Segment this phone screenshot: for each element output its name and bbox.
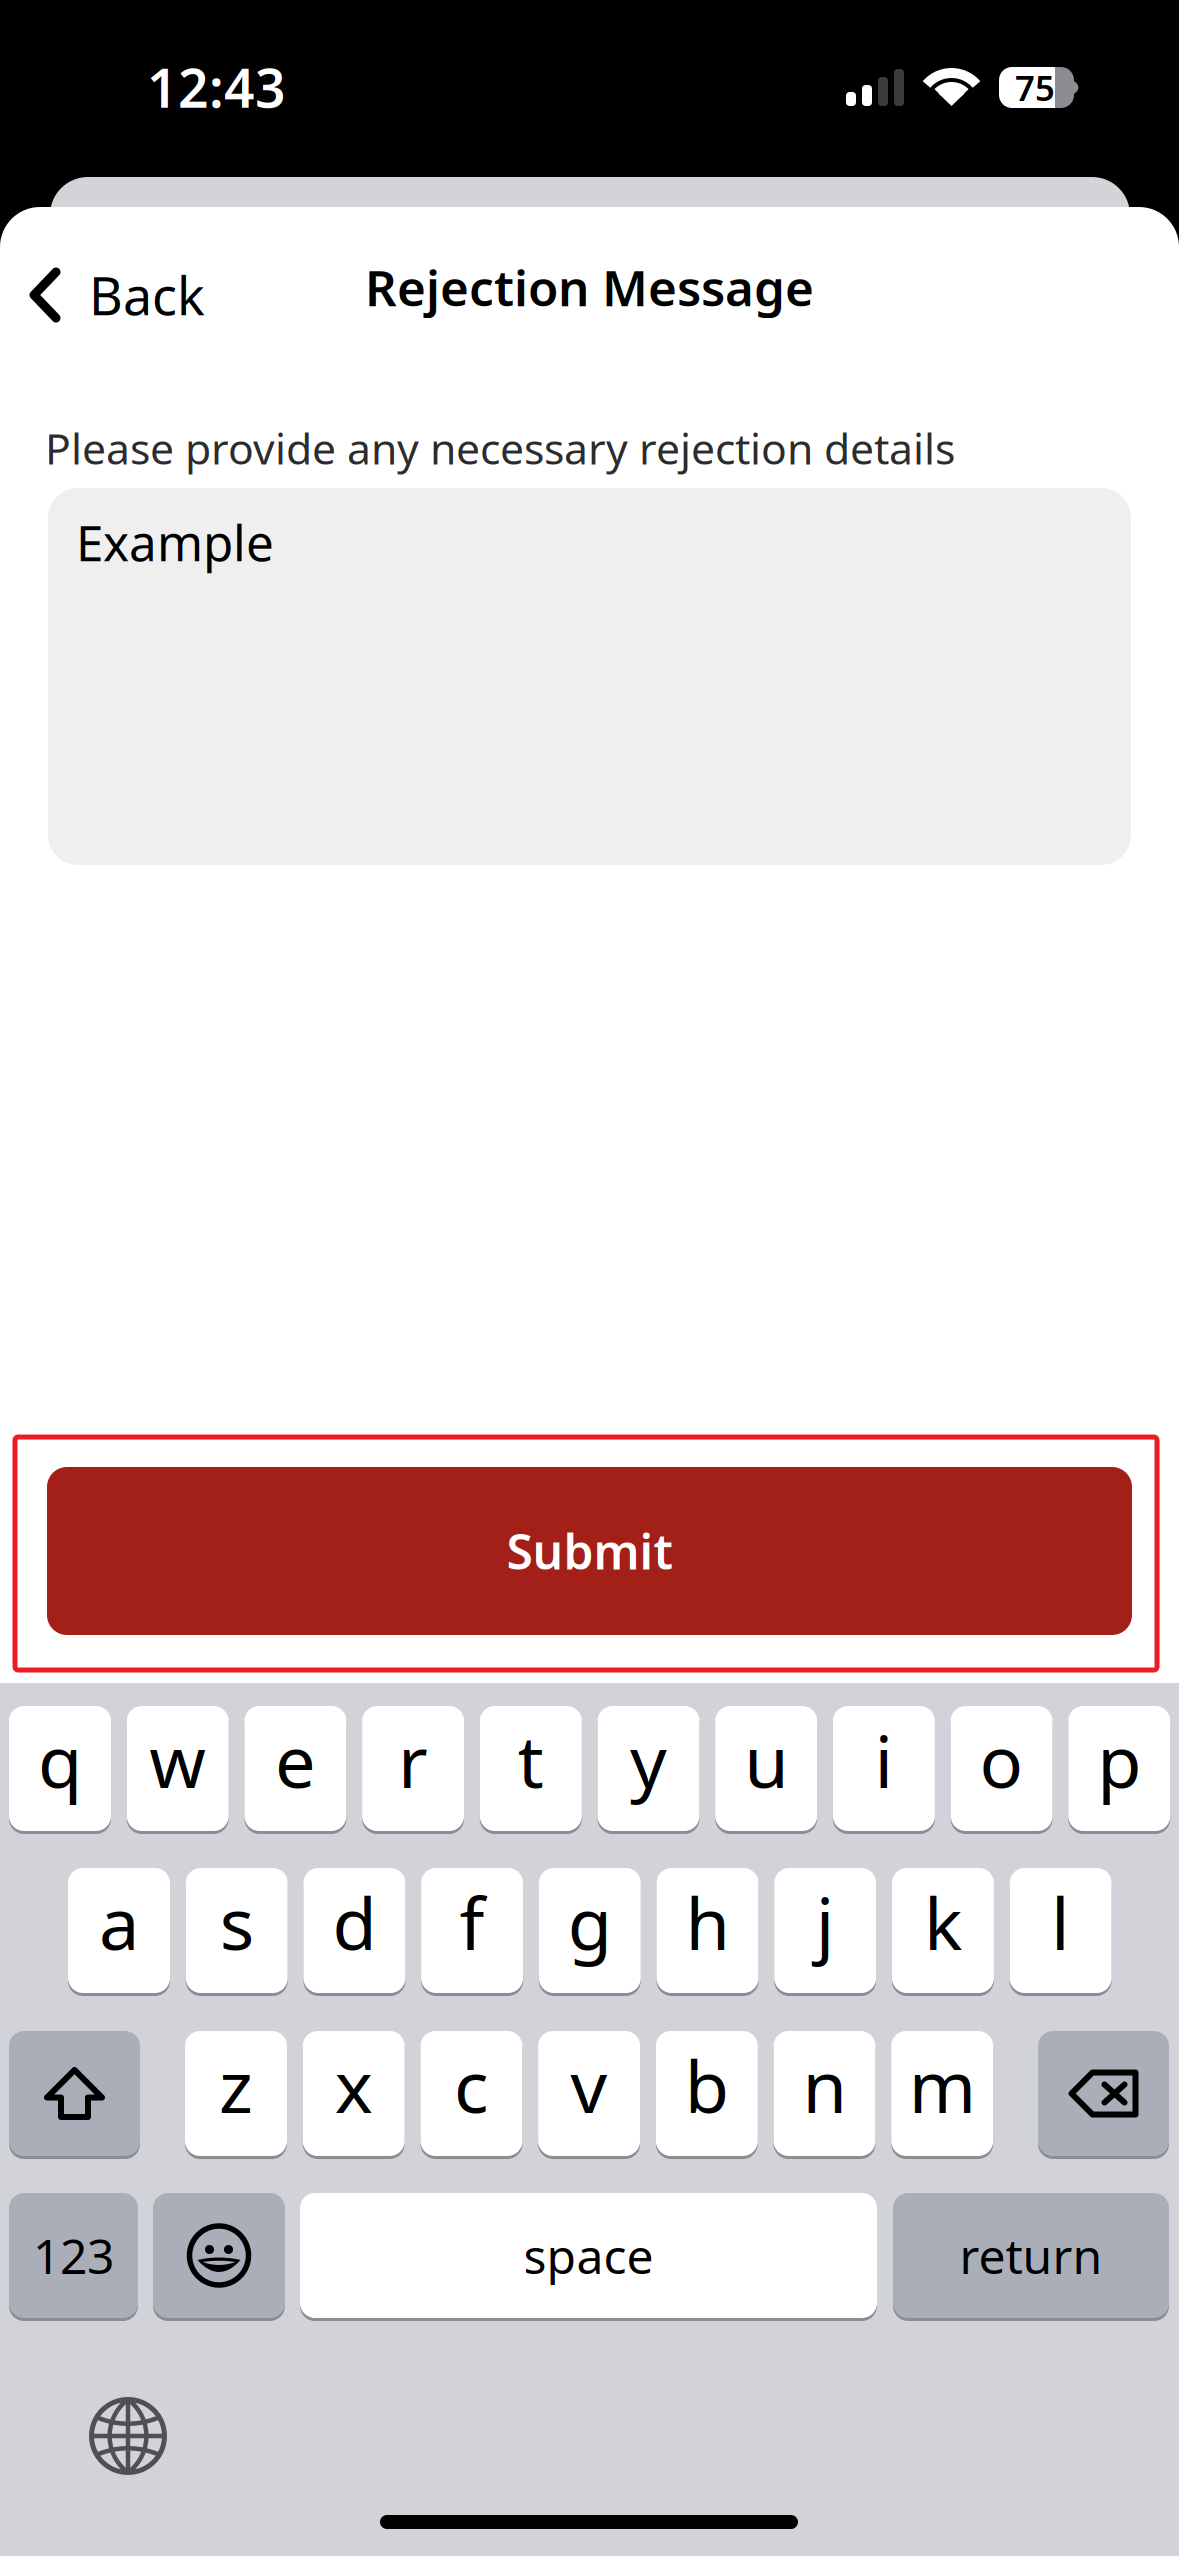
button[interactable]: f bbox=[421, 1866, 523, 1995]
staticText: u bbox=[744, 1712, 788, 1808]
button[interactable]: Submit bbox=[0, 0, 1179, 2556]
staticText: k bbox=[924, 1874, 962, 1970]
button[interactable]: space bbox=[300, 2191, 877, 2320]
staticText: x bbox=[335, 2037, 373, 2133]
button[interactable]: q bbox=[9, 1704, 111, 1833]
button[interactable]: 123 bbox=[9, 2191, 138, 2320]
button[interactable]: i bbox=[833, 1704, 935, 1833]
staticText: Example bbox=[76, 509, 274, 575]
staticText: i bbox=[874, 1712, 893, 1808]
staticText: d bbox=[332, 1874, 376, 1970]
staticText: o bbox=[980, 1712, 1024, 1808]
button[interactable]: t bbox=[480, 1704, 582, 1833]
button[interactable]: x bbox=[303, 2029, 405, 2158]
button[interactable]: h bbox=[656, 1866, 758, 1995]
staticText: s bbox=[220, 1874, 254, 1970]
button[interactable]: e bbox=[244, 1704, 346, 1833]
staticText: c bbox=[454, 2037, 489, 2133]
staticText: Rejection Message bbox=[365, 254, 814, 320]
staticText: e bbox=[275, 1712, 316, 1808]
staticText: Submit bbox=[506, 1519, 672, 1583]
staticText: w bbox=[149, 1712, 206, 1808]
staticText: p bbox=[1097, 1712, 1141, 1808]
button[interactable]: w bbox=[127, 1704, 229, 1833]
button[interactable]: Next keyboard bbox=[90, 2398, 166, 2474]
staticText: y bbox=[630, 1712, 667, 1808]
staticText: m bbox=[909, 2037, 976, 2133]
button[interactable]: j bbox=[774, 1866, 876, 1995]
button[interactable]: r bbox=[362, 1704, 464, 1833]
button[interactable]: a bbox=[68, 1866, 170, 1995]
staticText: g bbox=[568, 1874, 612, 1970]
staticText: 123 bbox=[33, 2224, 114, 2287]
staticText: h bbox=[685, 1874, 729, 1970]
button[interactable]: d bbox=[303, 1866, 405, 1995]
staticText: a bbox=[99, 1874, 139, 1970]
staticText: v bbox=[571, 2037, 608, 2133]
staticText: 12:43 bbox=[147, 52, 286, 122]
staticText: j bbox=[816, 1874, 835, 1970]
button[interactable]: v bbox=[538, 2029, 640, 2158]
staticText: b bbox=[685, 2037, 729, 2133]
staticText: r bbox=[398, 1712, 428, 1808]
staticText: return bbox=[959, 2224, 1102, 2287]
staticText: space bbox=[523, 2224, 653, 2287]
staticText: l bbox=[1051, 1874, 1070, 1970]
staticText: z bbox=[219, 2037, 253, 2133]
button[interactable]: l bbox=[1010, 1866, 1112, 1995]
button[interactable]: k bbox=[892, 1866, 994, 1995]
button[interactable]: b bbox=[656, 2029, 758, 2158]
button[interactable]: o bbox=[951, 1704, 1053, 1833]
button[interactable]: Emoji bbox=[153, 2191, 285, 2320]
button[interactable]: Delete bbox=[1038, 2029, 1169, 2158]
button[interactable]: z bbox=[185, 2029, 287, 2158]
button[interactable]: p bbox=[1068, 1704, 1170, 1833]
button[interactable]: y bbox=[597, 1704, 699, 1833]
button[interactable]: return bbox=[893, 2191, 1169, 2320]
staticText: 75 bbox=[1015, 64, 1055, 110]
button[interactable]: u bbox=[715, 1704, 817, 1833]
button[interactable]: g bbox=[539, 1866, 641, 1995]
staticText: t bbox=[518, 1712, 544, 1808]
staticText: f bbox=[460, 1874, 485, 1970]
staticText: q bbox=[38, 1712, 82, 1808]
button[interactable]: Shift bbox=[9, 2029, 140, 2158]
staticText: Please provide any necessary rejection d… bbox=[45, 420, 955, 476]
button[interactable]: Back bbox=[0, 0, 1179, 2556]
staticText: Back bbox=[89, 260, 205, 330]
staticText: n bbox=[802, 2037, 846, 2133]
button[interactable]: s bbox=[186, 1866, 288, 1995]
button[interactable]: m bbox=[891, 2029, 993, 2158]
button[interactable]: c bbox=[420, 2029, 522, 2158]
button[interactable]: n bbox=[773, 2029, 875, 2158]
